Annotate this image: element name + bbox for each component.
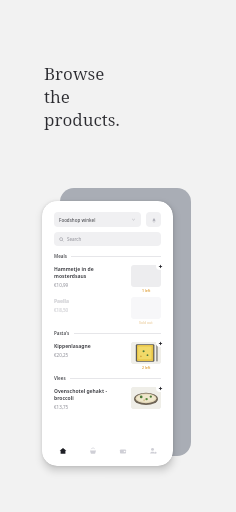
staticText: 1 left <box>142 288 151 293</box>
button[interactable]: Foodshop winkel <box>54 212 141 227</box>
staticText: Search <box>67 236 82 242</box>
staticText: Browse <box>44 62 105 85</box>
staticText: Foodshop winkel <box>59 217 96 223</box>
button[interactable]: Ovenschotel gehakt - broccoli <box>54 385 161 412</box>
staticText: Kippenlasagne <box>54 343 91 350</box>
button[interactable]: Add Ovenschotel gehakt - broccoli <box>156 384 164 392</box>
staticText: Meals <box>54 253 67 259</box>
button[interactable]: Account <box>138 441 168 461</box>
staticText: €13,75 <box>54 404 69 410</box>
button[interactable]: Wallet <box>108 441 138 461</box>
staticText: Vlees <box>54 375 66 381</box>
button[interactable]: Hammetje in de mosterdsaus <box>54 263 161 295</box>
staticText: €18,50 <box>54 307 69 313</box>
button[interactable]: Add Kippenlasagne <box>156 339 164 347</box>
staticText: Sold out <box>139 320 153 325</box>
staticText: the <box>44 85 70 108</box>
button[interactable]: Add Hammetje in de mosterdsaus <box>156 262 164 270</box>
staticText: €20,25 <box>54 352 69 358</box>
staticText: €10,99 <box>54 282 69 288</box>
button[interactable]: Home <box>47 441 78 461</box>
staticText: Ovenschotel gehakt - broccoli <box>54 388 108 402</box>
staticText: 2 left <box>142 365 151 370</box>
button[interactable]: Kippenlasagne <box>54 340 161 372</box>
staticText: Paella <box>54 298 70 305</box>
button[interactable]: Orders <box>78 441 108 461</box>
staticText: Hammetje in de mosterdsaus <box>54 266 127 280</box>
button[interactable]: Notifications <box>146 212 161 227</box>
button[interactable]: Search <box>54 232 161 246</box>
button[interactable]: Paella <box>54 295 161 327</box>
staticText: Pasta's <box>54 330 70 336</box>
staticText: products. <box>44 108 120 131</box>
